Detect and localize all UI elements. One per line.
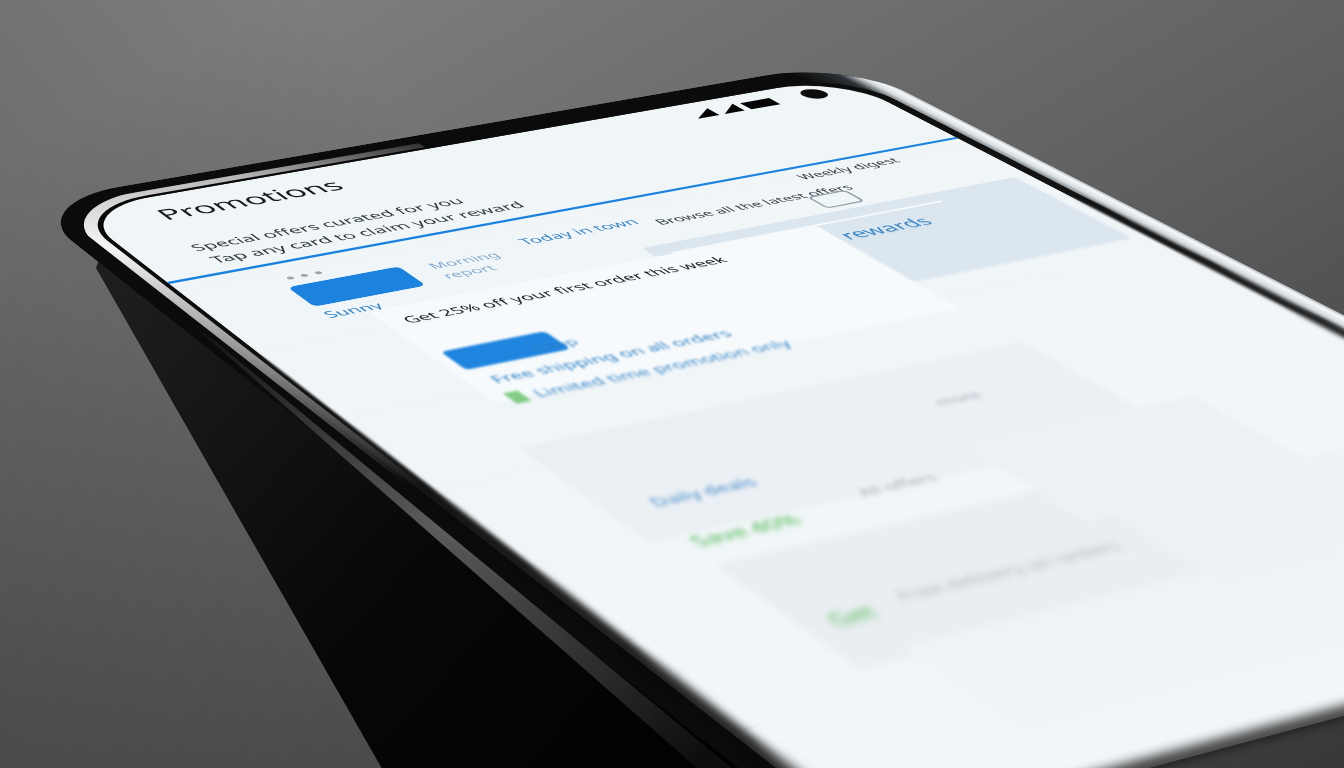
button[interactable]: Shop now [97,267,163,293]
button[interactable] [87,533,327,645]
button[interactable] [297,559,453,647]
button[interactable] [279,477,427,569]
button[interactable] [279,477,427,569]
button[interactable]: Weather today [65,157,137,187]
button[interactable] [277,191,543,295]
button[interactable]: Shop now [97,267,163,293]
button[interactable] [277,191,543,295]
button[interactable] [89,205,389,335]
button[interactable] [87,533,327,645]
button[interactable] [297,559,453,647]
staticText: All offers [197,491,243,506]
button[interactable]: Weather today [65,157,137,187]
button[interactable] [297,559,453,647]
button[interactable] [87,533,327,645]
button[interactable]: Shop now [97,267,163,293]
button[interactable] [279,477,427,569]
button[interactable] [119,635,429,719]
button[interactable]: Shop now [97,267,163,293]
button[interactable] [89,205,389,335]
button[interactable]: Weather today [65,157,137,187]
button[interactable] [119,635,429,719]
button[interactable] [89,205,389,335]
staticText: Limited time promotion only [114,325,275,341]
button[interactable]: Weather today [65,157,137,187]
button[interactable] [279,477,427,569]
button[interactable] [297,559,453,647]
button[interactable] [89,205,389,335]
button[interactable] [277,191,543,295]
button[interactable] [297,559,453,647]
button[interactable] [279,477,427,569]
button[interactable] [89,205,389,335]
button[interactable] [119,635,429,719]
button[interactable] [87,533,327,645]
button[interactable] [87,533,327,645]
button[interactable] [279,477,427,569]
button[interactable] [87,533,327,645]
button[interactable] [71,385,391,501]
button[interactable]: Shop now [97,267,163,293]
staticText: report [153,172,186,187]
button[interactable]: Shop now [97,267,163,293]
button[interactable] [297,559,453,647]
button[interactable] [277,191,543,295]
staticText: Join today [293,245,363,265]
button[interactable]: Weather today [65,157,137,187]
button[interactable]: Weather today [65,157,137,187]
button[interactable] [87,533,327,645]
button[interactable] [71,385,391,501]
button[interactable] [277,191,543,295]
button[interactable]: Weather today [65,157,137,187]
button[interactable] [279,477,427,569]
button[interactable] [119,635,429,719]
button[interactable] [277,191,543,295]
button[interactable]: Weather today [65,157,137,187]
button[interactable] [71,385,391,501]
button[interactable] [71,385,391,501]
button[interactable] [119,635,429,719]
button[interactable]: Weather today [65,157,137,187]
button[interactable] [89,205,389,335]
button[interactable] [277,191,543,295]
button[interactable] [119,635,429,719]
button[interactable] [89,205,389,335]
button[interactable] [71,385,391,501]
button[interactable] [297,559,453,647]
button[interactable] [277,191,543,295]
button[interactable] [87,533,327,645]
button[interactable] [119,635,429,719]
button[interactable] [71,385,391,501]
button[interactable]: Shop now [97,267,163,293]
button[interactable] [279,477,427,569]
button[interactable] [297,559,453,647]
button[interactable] [119,635,429,719]
button[interactable] [89,205,389,335]
button[interactable] [279,477,427,569]
button[interactable] [297,559,453,647]
button[interactable] [277,191,543,295]
button[interactable]: Shop now [97,267,163,293]
button[interactable] [71,385,391,501]
button[interactable] [71,385,391,501]
button[interactable] [87,533,327,645]
button[interactable] [71,385,391,501]
button[interactable] [119,635,429,719]
button[interactable]: Shop now [97,267,163,293]
button[interactable] [89,205,389,335]
